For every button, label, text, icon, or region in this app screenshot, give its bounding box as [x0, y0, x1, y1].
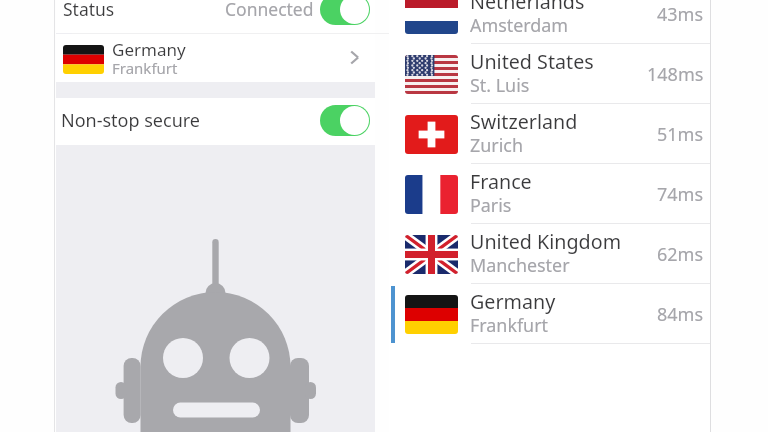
button[interactable]: Netherlands [389, 0, 710, 44]
staticText: Connected [225, 0, 314, 21]
staticText: Frankfurt [112, 58, 178, 78]
button[interactable]: France [389, 164, 710, 224]
staticText: 43ms [657, 2, 704, 27]
staticText: Switzerland [470, 108, 578, 135]
staticText: United States [470, 48, 594, 75]
other: Open server list [347, 50, 362, 65]
staticText: Germany [112, 38, 186, 61]
staticText: Paris [470, 193, 512, 217]
staticText: 51ms [657, 122, 704, 147]
staticText: Amsterdam [470, 13, 569, 37]
staticText: Status [63, 0, 115, 21]
staticText: Netherlands [470, 0, 585, 15]
button[interactable]: Toggle switch, on [320, 0, 370, 25]
button[interactable]: United States [389, 44, 710, 104]
button[interactable]: Non-stop secure [56, 98, 375, 145]
staticText: 148ms [647, 62, 704, 87]
staticText: Germany [470, 288, 556, 315]
button[interactable]: Germany [56, 34, 375, 82]
button[interactable]: Switzerland [389, 104, 710, 164]
button[interactable]: Toggle switch, on [320, 105, 370, 136]
staticText: St. Luis [470, 73, 530, 97]
staticText: 74ms [657, 182, 704, 207]
button[interactable]: Germany [389, 284, 710, 344]
staticText: Frankfurt [470, 313, 549, 337]
staticText: 62ms [657, 242, 704, 267]
button[interactable]: United Kingdom [389, 224, 710, 284]
button[interactable]: Status [56, 0, 375, 33]
staticText: United Kingdom [470, 228, 622, 255]
staticText: Non-stop secure [61, 108, 201, 133]
staticText: Manchester [470, 253, 570, 277]
staticText: Zurich [470, 133, 523, 157]
staticText: 84ms [657, 302, 704, 327]
staticText: France [470, 168, 532, 195]
